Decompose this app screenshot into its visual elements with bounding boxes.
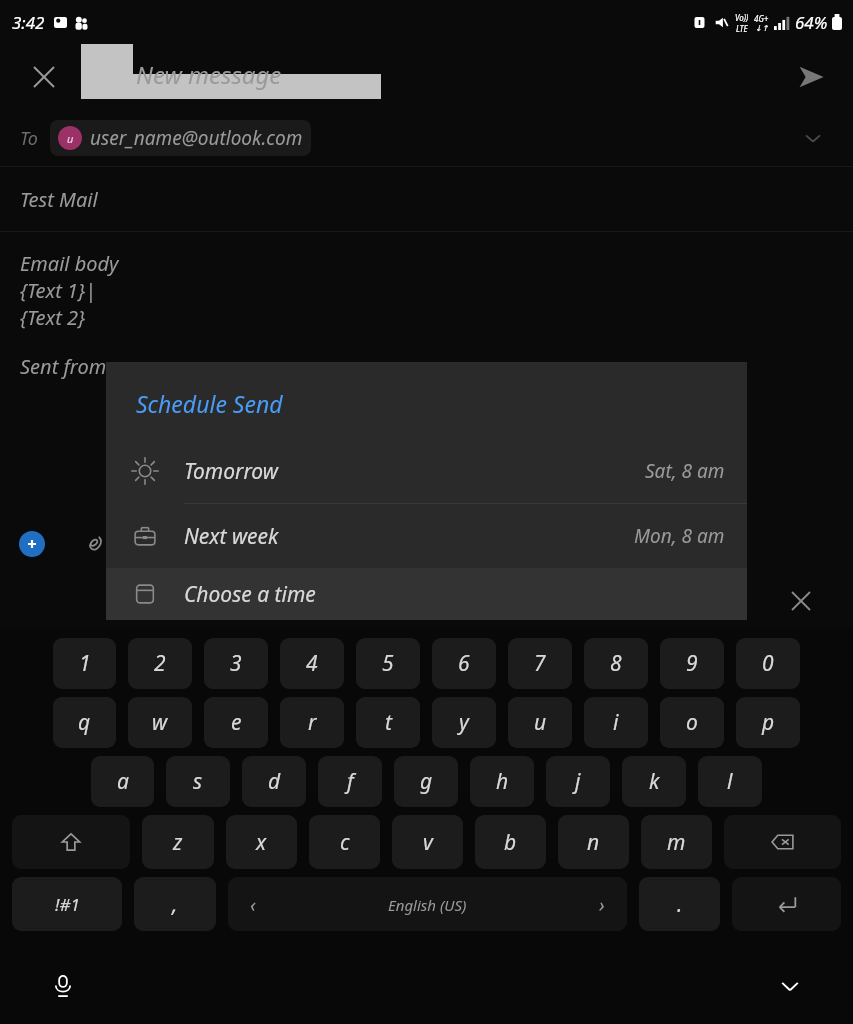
staticText: f bbox=[347, 767, 354, 796]
button[interactable]: u bbox=[508, 697, 572, 748]
staticText: q bbox=[78, 708, 91, 737]
button[interactable]: Choose a time bbox=[106, 568, 747, 620]
staticText: Choose a time bbox=[184, 580, 316, 609]
button[interactable]: u bbox=[50, 120, 311, 156]
button[interactable]: n bbox=[558, 815, 629, 869]
staticText: 4G+ bbox=[754, 13, 769, 24]
staticText: ↓↑ bbox=[755, 24, 769, 33]
staticText: {Text 2} bbox=[20, 304, 86, 331]
staticText: n bbox=[587, 828, 600, 857]
button[interactable]: c bbox=[309, 815, 380, 869]
staticText: d bbox=[268, 767, 281, 796]
staticText: Tomorrow bbox=[184, 457, 278, 486]
button[interactable]: Shift bbox=[12, 815, 130, 869]
staticText: i bbox=[613, 708, 619, 737]
button[interactable]: 5 bbox=[356, 638, 420, 689]
staticText: l bbox=[727, 767, 733, 796]
staticText: w bbox=[152, 708, 168, 737]
button[interactable]: !#1 bbox=[12, 877, 122, 931]
button[interactable]: 0 bbox=[736, 638, 800, 689]
staticText: u bbox=[534, 708, 547, 737]
staticText: 2 bbox=[154, 649, 166, 678]
button[interactable]: 3 bbox=[204, 638, 268, 689]
staticText: 9 bbox=[686, 649, 698, 678]
button[interactable]: t bbox=[356, 697, 420, 748]
button[interactable]: x bbox=[226, 815, 297, 869]
button[interactable]: f bbox=[318, 756, 382, 807]
button[interactable]: m bbox=[641, 815, 712, 869]
button[interactable]: 9 bbox=[660, 638, 724, 689]
button[interactable]: p bbox=[736, 697, 800, 748]
staticText: u bbox=[67, 131, 74, 146]
button[interactable]: . bbox=[639, 877, 720, 931]
staticText: 3 bbox=[230, 649, 242, 678]
button[interactable]: o bbox=[660, 697, 724, 748]
button[interactable]: 1 bbox=[53, 638, 116, 689]
staticText: , bbox=[172, 890, 178, 919]
staticText: 1 bbox=[79, 649, 91, 678]
staticText: t bbox=[385, 708, 392, 737]
button[interactable]: Expand recipients bbox=[791, 116, 835, 160]
button[interactable]: j bbox=[546, 756, 610, 807]
staticText: c bbox=[340, 828, 350, 857]
button[interactable]: Attach file bbox=[74, 524, 114, 564]
staticText: g bbox=[420, 767, 433, 796]
button[interactable]: Test Mail bbox=[0, 167, 853, 231]
staticText: Mon, 8 am bbox=[634, 523, 725, 549]
button[interactable]: e bbox=[204, 697, 268, 748]
staticText: Sent from bbox=[20, 353, 107, 380]
button[interactable]: d bbox=[242, 756, 306, 807]
staticText: 4 bbox=[306, 649, 318, 678]
button[interactable]: Email body bbox=[0, 232, 853, 1024]
button[interactable]: s bbox=[166, 756, 230, 807]
button[interactable]: Send bbox=[787, 53, 835, 101]
button[interactable]: Add bbox=[12, 524, 52, 564]
staticText: z bbox=[173, 828, 183, 857]
button[interactable]: 2 bbox=[128, 638, 192, 689]
button[interactable]: Close bbox=[20, 53, 68, 101]
staticText: Next week bbox=[184, 522, 279, 551]
button[interactable]: Next week bbox=[106, 504, 747, 568]
staticText: s bbox=[193, 767, 203, 796]
button[interactable]: Enter bbox=[732, 877, 841, 931]
staticText: r bbox=[308, 708, 317, 737]
staticText: 6 bbox=[458, 649, 470, 678]
button[interactable]: q bbox=[53, 697, 116, 748]
button[interactable]: w bbox=[128, 697, 192, 748]
staticText: k bbox=[649, 767, 660, 796]
staticText: . bbox=[677, 890, 683, 919]
button[interactable]: Tomorrow bbox=[106, 439, 747, 503]
staticText: Vo)) bbox=[735, 12, 749, 23]
staticText: To bbox=[20, 126, 38, 151]
button[interactable]: v bbox=[392, 815, 463, 869]
staticText: ‹ bbox=[250, 891, 256, 918]
button[interactable]: Hide keyboard bbox=[767, 963, 813, 1009]
button[interactable]: l bbox=[698, 756, 762, 807]
staticText: {Text 1}| bbox=[20, 277, 97, 304]
button[interactable]: , bbox=[134, 877, 216, 931]
staticText: b bbox=[504, 828, 517, 857]
button[interactable]: g bbox=[394, 756, 458, 807]
button[interactable]: z bbox=[142, 815, 214, 869]
button[interactable]: b bbox=[475, 815, 546, 869]
button[interactable]: k bbox=[622, 756, 686, 807]
staticText: v bbox=[423, 828, 433, 857]
button[interactable]: Close bbox=[778, 578, 824, 624]
button[interactable]: 7 bbox=[508, 638, 572, 689]
staticText: 7 bbox=[534, 649, 546, 678]
button[interactable]: 6 bbox=[432, 638, 496, 689]
staticText: › bbox=[599, 891, 605, 918]
button[interactable]: y bbox=[432, 697, 496, 748]
button[interactable]: 4 bbox=[280, 638, 344, 689]
staticText: 5 bbox=[382, 649, 394, 678]
button[interactable]: ‹ bbox=[228, 877, 627, 931]
button[interactable]: a bbox=[91, 756, 154, 807]
button[interactable]: i bbox=[584, 697, 648, 748]
staticText: a bbox=[117, 767, 129, 796]
button[interactable]: r bbox=[280, 697, 344, 748]
staticText: Sat, 8 am bbox=[645, 458, 725, 484]
button[interactable]: Backspace bbox=[724, 815, 841, 869]
button[interactable]: 8 bbox=[584, 638, 648, 689]
button[interactable]: h bbox=[470, 756, 534, 807]
button[interactable]: Voice input bbox=[40, 963, 86, 1009]
